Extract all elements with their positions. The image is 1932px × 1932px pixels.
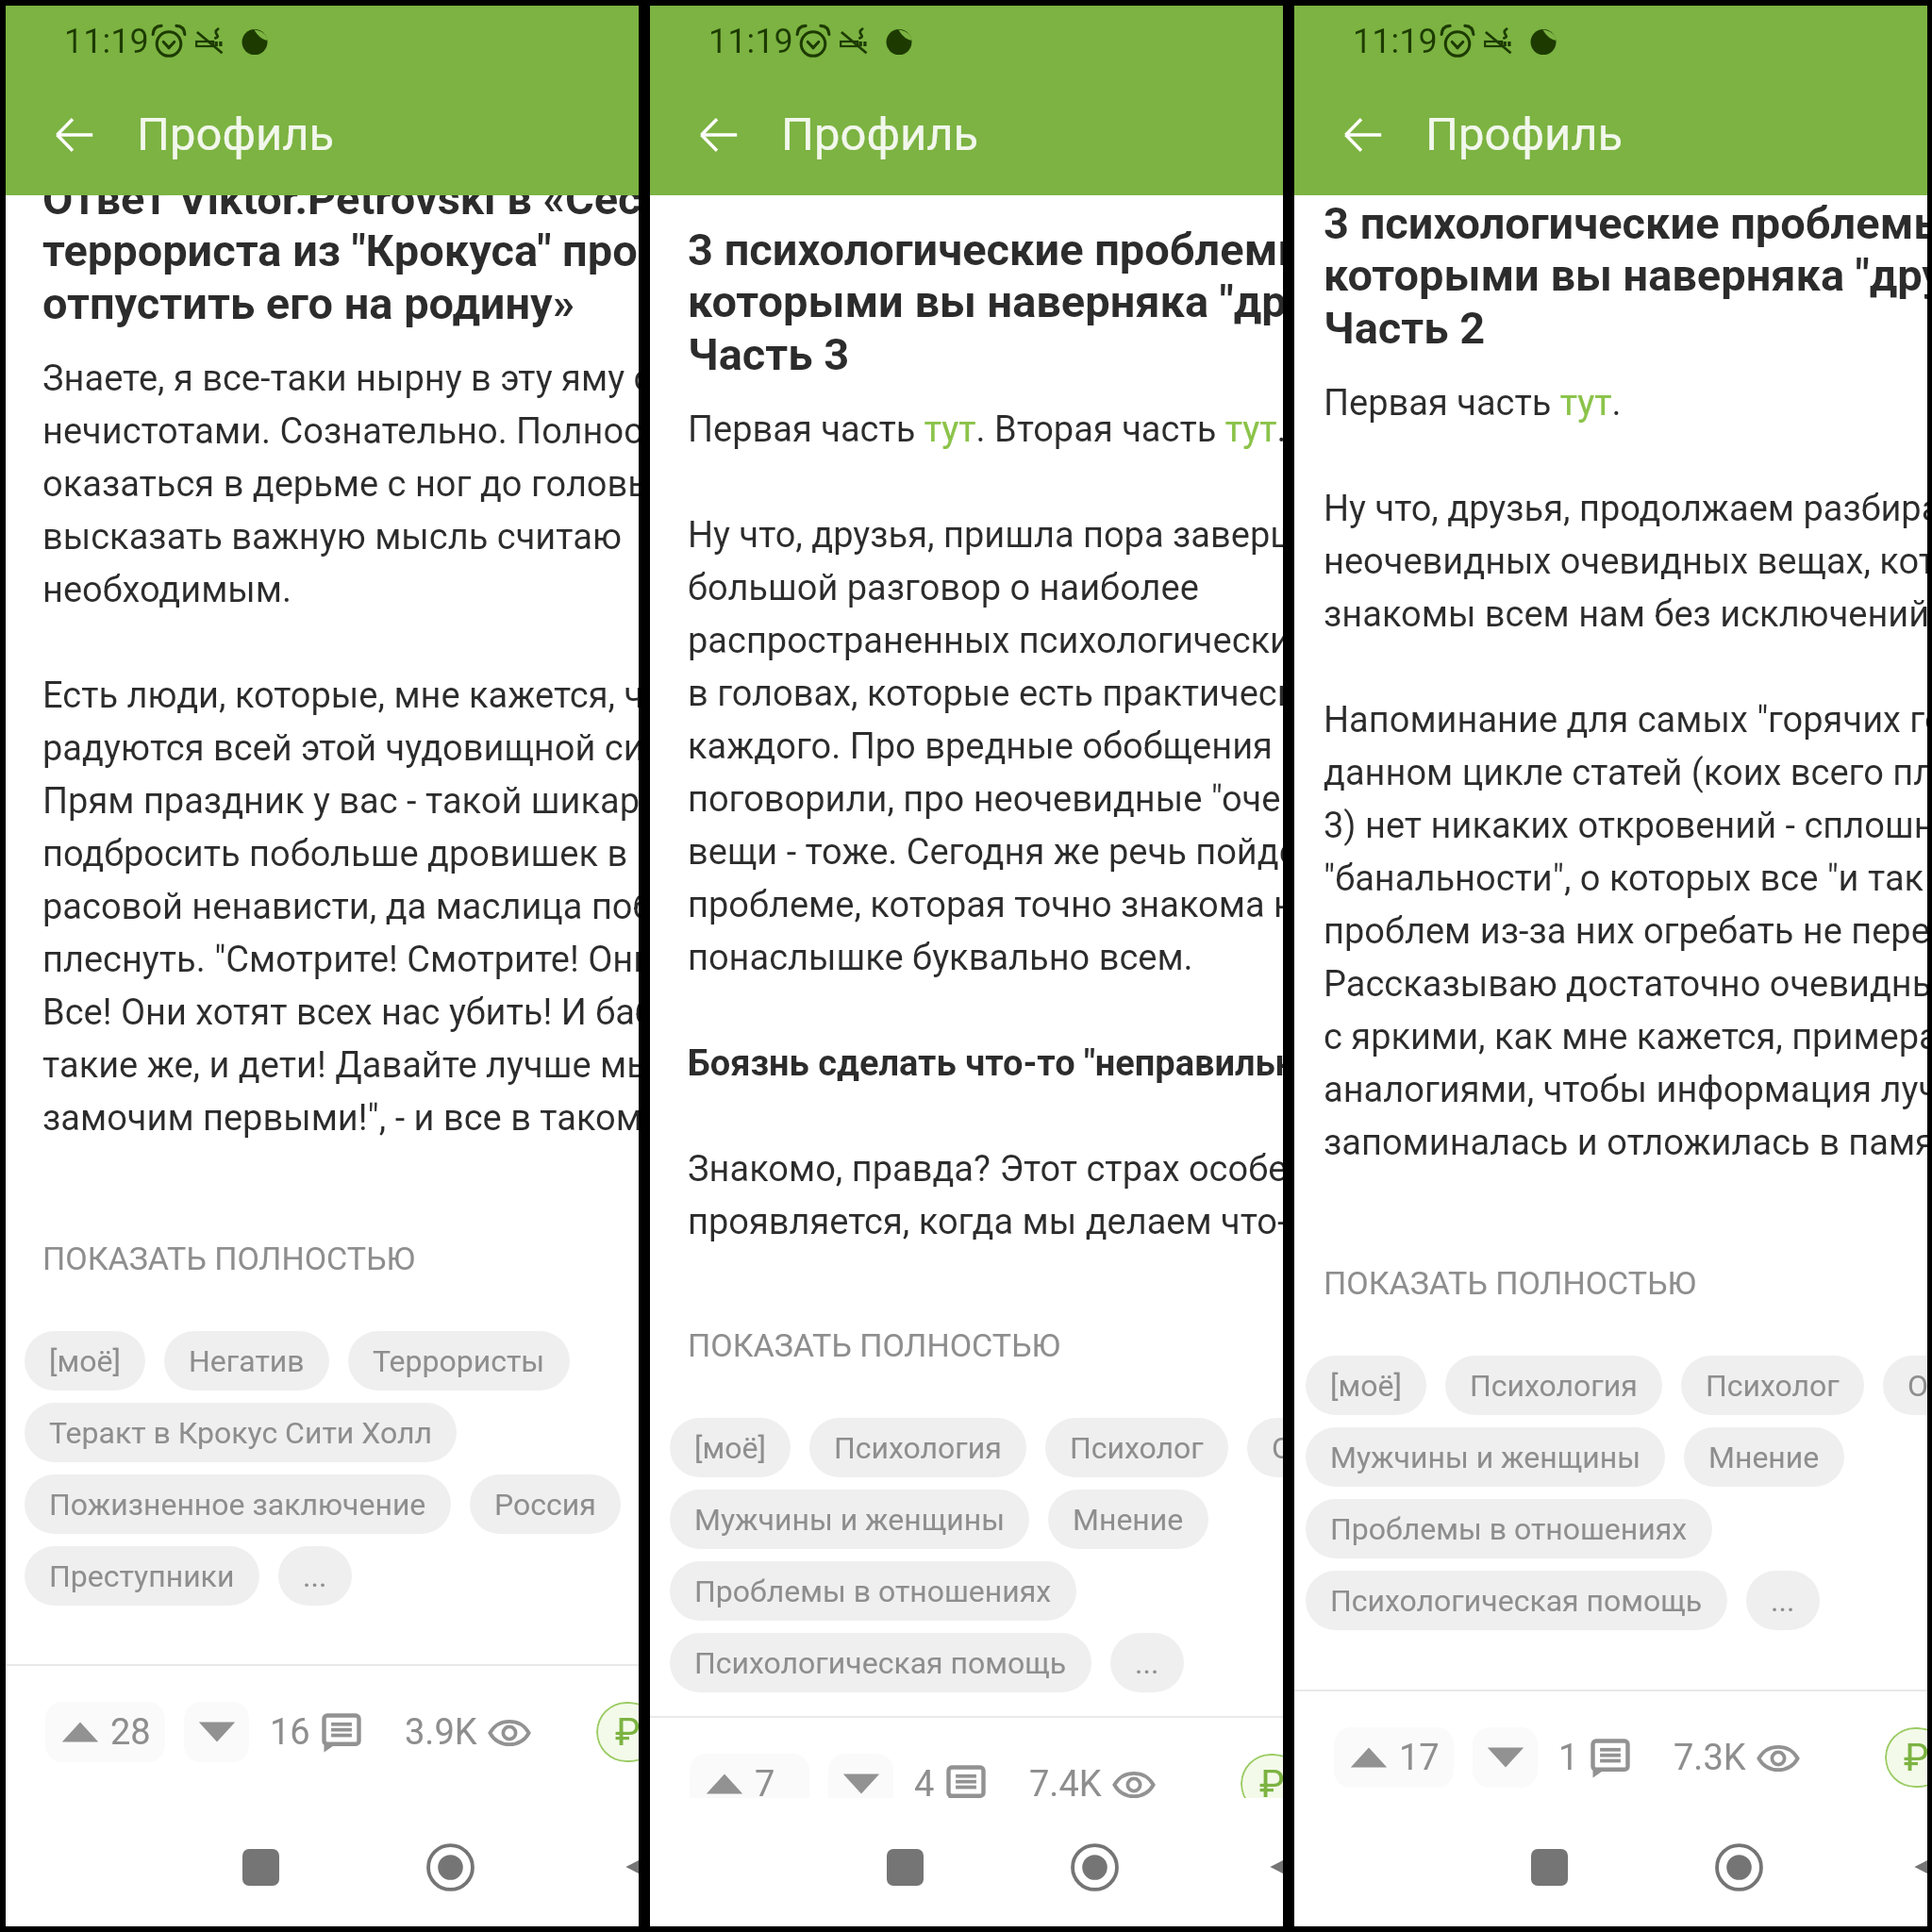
- staticText: Россия: [494, 1487, 596, 1523]
- button[interactable]: Home: [410, 1827, 490, 1907]
- staticText: Психологическая помощь: [694, 1645, 1067, 1681]
- button[interactable]: Donate: [1885, 1727, 1927, 1788]
- staticText: Профиль: [1425, 108, 1624, 161]
- button[interactable]: Donate: [1241, 1754, 1283, 1814]
- staticText: ...: [1771, 1583, 1795, 1619]
- staticText: Отношения: [1272, 1430, 1283, 1466]
- button[interactable]: Террористы: [348, 1331, 570, 1391]
- button[interactable]: Back: [33, 93, 116, 176]
- button[interactable]: Психолог: [1045, 1418, 1228, 1477]
- button[interactable]: Теракт в Крокус Сити Холл: [25, 1403, 457, 1462]
- staticText: Преступники: [49, 1558, 235, 1594]
- staticText: Мужчины и женщины: [1330, 1440, 1641, 1475]
- staticText: Знаете, я все-таки нырну в эту яму с неч…: [42, 358, 639, 1139]
- button[interactable]: Россия: [470, 1474, 621, 1534]
- staticText: ПОКАЗАТЬ ПОЛНОСТЬЮ: [42, 1240, 415, 1277]
- button[interactable]: ...: [1746, 1571, 1820, 1630]
- staticText: Теракт в Крокус Сити Холл: [49, 1415, 432, 1451]
- button[interactable]: Back: [677, 93, 760, 176]
- button[interactable]: Преступники: [25, 1546, 259, 1606]
- button[interactable]: [моё]: [1306, 1356, 1426, 1415]
- button[interactable]: Comments: [914, 1763, 986, 1806]
- button[interactable]: Мужчины и женщины: [1306, 1427, 1665, 1487]
- staticText: Пожизненное заключение: [49, 1487, 426, 1523]
- button[interactable]: [моё]: [670, 1418, 791, 1477]
- staticText: Мужчины и женщины: [694, 1502, 1005, 1538]
- button[interactable]: Recents: [221, 1827, 300, 1907]
- button[interactable]: 28: [45, 1702, 165, 1762]
- button[interactable]: Отношения: [1883, 1356, 1927, 1415]
- staticText: 3 психологические проблемы, с которыми в…: [1324, 197, 1927, 355]
- button[interactable]: Comments: [1558, 1737, 1630, 1779]
- button[interactable]: 7: [690, 1754, 809, 1814]
- staticText: 7.4K: [1029, 1763, 1102, 1806]
- button[interactable]: ПОКАЗАТЬ ПОЛНОСТЬЮ: [42, 1240, 415, 1277]
- button[interactable]: ПОКАЗАТЬ ПОЛНОСТЬЮ: [1324, 1264, 1696, 1302]
- button[interactable]: Психология: [809, 1418, 1026, 1477]
- button[interactable]: Downvote: [184, 1702, 249, 1762]
- staticText: Террористы: [373, 1343, 545, 1379]
- staticText: Первая часть тут. Ну что, друзья, продол…: [1324, 382, 1927, 1163]
- staticText: Профиль: [137, 108, 335, 161]
- button[interactable]: Психолог: [1681, 1356, 1864, 1415]
- staticText: Психологическая помощь: [1330, 1583, 1703, 1619]
- button[interactable]: ПОКАЗАТЬ ПОЛНОСТЬЮ: [688, 1326, 1060, 1364]
- button[interactable]: Recents: [865, 1827, 944, 1907]
- button[interactable]: [моё]: [25, 1331, 145, 1391]
- staticText: Мнение: [1073, 1502, 1184, 1538]
- staticText: Проблемы в отношениях: [694, 1574, 1052, 1609]
- staticText: Профиль: [781, 108, 979, 161]
- staticText: Ответ Viktor.Petrovski в «Сестру террори…: [42, 195, 639, 330]
- button[interactable]: Психологическая помощь: [1306, 1571, 1727, 1630]
- button[interactable]: Мнение: [1684, 1427, 1844, 1487]
- button[interactable]: Back: [1891, 1827, 1927, 1907]
- staticText: 28: [110, 1711, 151, 1754]
- staticText: 11:19: [64, 22, 149, 61]
- button[interactable]: Back: [1247, 1827, 1283, 1907]
- staticText: 3.9K: [405, 1711, 477, 1754]
- staticText: Психология: [1470, 1368, 1638, 1404]
- button[interactable]: Downvote: [828, 1754, 893, 1814]
- staticText: ПОКАЗАТЬ ПОЛНОСТЬЮ: [1324, 1264, 1696, 1302]
- staticText: [моё]: [1330, 1368, 1402, 1404]
- button[interactable]: Home: [1055, 1827, 1134, 1907]
- button[interactable]: Негатив: [164, 1331, 329, 1391]
- staticText: 11:19: [1353, 22, 1438, 61]
- button[interactable]: ...: [1110, 1633, 1184, 1692]
- button[interactable]: Мнение: [1048, 1490, 1208, 1549]
- staticText: ...: [1135, 1645, 1159, 1681]
- staticText: Негатив: [189, 1343, 305, 1379]
- button[interactable]: Home: [1699, 1827, 1778, 1907]
- button[interactable]: ...: [278, 1546, 352, 1606]
- button[interactable]: Downvote: [1473, 1727, 1538, 1788]
- button[interactable]: Мужчины и женщины: [670, 1490, 1029, 1549]
- staticText: Психолог: [1070, 1430, 1204, 1466]
- staticText: ₽: [615, 1710, 639, 1755]
- staticText: 16: [270, 1711, 310, 1754]
- staticText: Психолог: [1706, 1368, 1840, 1404]
- button[interactable]: Проблемы в отношениях: [1306, 1499, 1712, 1558]
- staticText: 7.3K: [1674, 1737, 1746, 1779]
- staticText: ₽: [1259, 1762, 1283, 1807]
- staticText: 7: [755, 1763, 775, 1806]
- button[interactable]: Back: [603, 1827, 639, 1907]
- staticText: Первая часть тут. Вторая часть тут. Ну ч…: [688, 408, 1283, 1242]
- button[interactable]: Пожизненное заключение: [25, 1474, 451, 1534]
- button[interactable]: Отношения: [1247, 1418, 1283, 1477]
- button[interactable]: Donate: [596, 1702, 639, 1762]
- staticText: Проблемы в отношениях: [1330, 1511, 1688, 1547]
- staticText: Психология: [834, 1430, 1002, 1466]
- button[interactable]: Back: [1322, 93, 1405, 176]
- button[interactable]: Психологическая помощь: [670, 1633, 1091, 1692]
- button[interactable]: 17: [1334, 1727, 1454, 1788]
- staticText: 1: [1558, 1737, 1579, 1779]
- staticText: Мнение: [1708, 1440, 1820, 1475]
- button[interactable]: Recents: [1509, 1827, 1589, 1907]
- staticText: [моё]: [49, 1343, 121, 1379]
- staticText: ₽: [1904, 1736, 1927, 1780]
- staticText: [моё]: [694, 1430, 766, 1466]
- button[interactable]: Психология: [1445, 1356, 1662, 1415]
- staticText: 4: [914, 1763, 935, 1806]
- button[interactable]: Проблемы в отношениях: [670, 1561, 1076, 1621]
- button[interactable]: Comments: [270, 1711, 361, 1754]
